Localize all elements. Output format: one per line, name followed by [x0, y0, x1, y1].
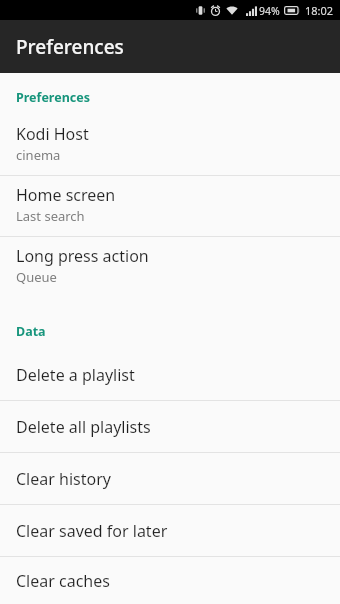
other: Mobile signal: [246, 6, 257, 16]
other: Alarm set: [210, 5, 221, 16]
button[interactable]: Delete all playlists: [0, 401, 340, 452]
staticText: Queue: [16, 268, 57, 286]
staticText: 18:02: [305, 3, 334, 18]
staticText: Clear saved for later: [16, 520, 168, 542]
staticText: 94%: [259, 4, 280, 18]
staticText: Home screen: [16, 184, 116, 206]
staticText: Preferences: [16, 34, 124, 60]
button[interactable]: Clear history: [0, 453, 340, 504]
button[interactable]: Long press action: [0, 237, 340, 297]
staticText: Clear caches: [16, 570, 110, 592]
staticText: Kodi Host: [16, 123, 89, 145]
button[interactable]: Delete a playlist: [0, 349, 340, 400]
button[interactable]: Home screen: [0, 176, 340, 236]
staticText: Preferences: [16, 89, 90, 106]
staticText: Last search: [16, 207, 85, 225]
button[interactable]: Clear saved for later: [0, 505, 340, 556]
staticText: Data: [16, 323, 46, 340]
staticText: Long press action: [16, 245, 149, 267]
other: Wi-Fi: [226, 6, 238, 16]
other: Vibrate mode: [196, 5, 205, 16]
staticText: Clear history: [16, 468, 111, 490]
staticText: cinema: [16, 146, 61, 164]
staticText: Delete all playlists: [16, 416, 151, 438]
staticText: Delete a playlist: [16, 364, 135, 386]
button[interactable]: Clear caches: [0, 557, 340, 604]
other: Battery: [284, 6, 301, 15]
button[interactable]: Kodi Host: [0, 115, 340, 175]
